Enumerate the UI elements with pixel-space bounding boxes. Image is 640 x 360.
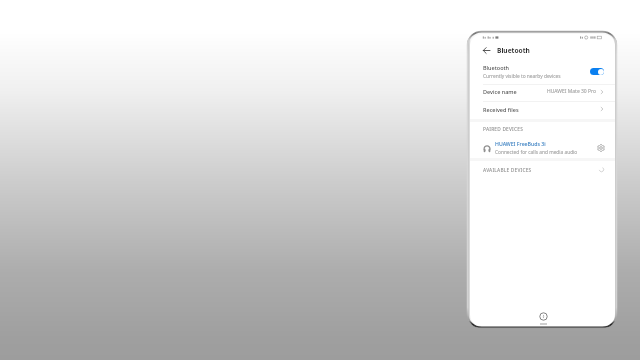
button[interactable]: Received files xyxy=(470,101,615,119)
staticText: PAIRED DEVICES xyxy=(483,126,605,133)
staticText: Device name xyxy=(483,88,547,95)
staticText: Received files xyxy=(483,106,597,113)
button[interactable]: Back xyxy=(481,45,492,56)
button[interactable]: Device settings xyxy=(596,143,606,153)
staticText: Currently visible to nearby devices xyxy=(483,73,561,80)
staticText: HUAWEI Mate 30 Pro xyxy=(547,88,597,95)
button[interactable]: Bluetooth toggle xyxy=(590,68,604,75)
button[interactable]: Bluetooth xyxy=(470,59,615,85)
staticText: Bluetooth xyxy=(483,64,510,71)
staticText: Bluetooth xyxy=(497,46,530,55)
button[interactable]: HUAWEI FreeBuds 3i xyxy=(470,136,615,158)
button[interactable]: Device name xyxy=(470,85,615,101)
staticText: HUAWEI FreeBuds 3i xyxy=(495,140,546,147)
staticText: AVAILABLE DEVICES xyxy=(483,167,598,174)
staticText: Connected for calls and media audio xyxy=(495,149,578,156)
